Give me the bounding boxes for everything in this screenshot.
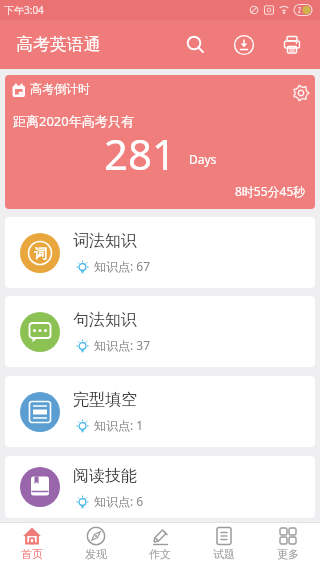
staticText: 首页 bbox=[21, 547, 43, 561]
staticText: 知识点: 67 bbox=[94, 258, 151, 274]
button[interactable] bbox=[220, 21, 268, 69]
button[interactable]: 句法知识 bbox=[5, 296, 315, 367]
staticText: 知识点: 37 bbox=[94, 337, 151, 353]
button[interactable]: 更多 bbox=[256, 523, 320, 569]
button[interactable]: 高考倒计时 bbox=[5, 75, 315, 209]
button[interactable] bbox=[292, 84, 310, 102]
button[interactable]: 试题 bbox=[192, 523, 256, 569]
staticText: 发现 bbox=[85, 547, 107, 561]
staticText: 高考英语通 bbox=[16, 34, 101, 55]
staticText: 8时55分45秒 bbox=[235, 183, 306, 199]
staticText: 281 bbox=[104, 125, 177, 182]
staticText: 知识点: 6 bbox=[94, 493, 144, 509]
staticText: 完型填空 bbox=[73, 390, 137, 410]
button[interactable]: 首页 bbox=[0, 523, 64, 569]
staticText: 下午3:04 bbox=[4, 3, 44, 17]
button[interactable]: 阅读技能 bbox=[5, 456, 315, 518]
staticText: 高考倒计时 bbox=[30, 81, 90, 96]
button[interactable]: 词 bbox=[5, 217, 315, 288]
staticText: Days bbox=[189, 151, 217, 167]
staticText: 句法知识 bbox=[73, 310, 137, 330]
staticText: 更多 bbox=[277, 547, 299, 561]
staticText: 距离2020年高考只有 bbox=[13, 112, 134, 130]
button[interactable]: 发现 bbox=[64, 523, 128, 569]
staticText: 知识点: 1 bbox=[94, 417, 144, 433]
staticText: 试题 bbox=[213, 547, 235, 561]
staticText: 作文 bbox=[149, 547, 171, 561]
staticText: 词法知识 bbox=[73, 231, 137, 251]
staticText: 词 bbox=[34, 245, 47, 261]
button[interactable] bbox=[268, 21, 316, 69]
button[interactable]: 作文 bbox=[128, 523, 192, 569]
button[interactable]: 完型填空 bbox=[5, 376, 315, 447]
staticText: 阅读技能 bbox=[73, 466, 137, 486]
button[interactable] bbox=[172, 21, 220, 69]
